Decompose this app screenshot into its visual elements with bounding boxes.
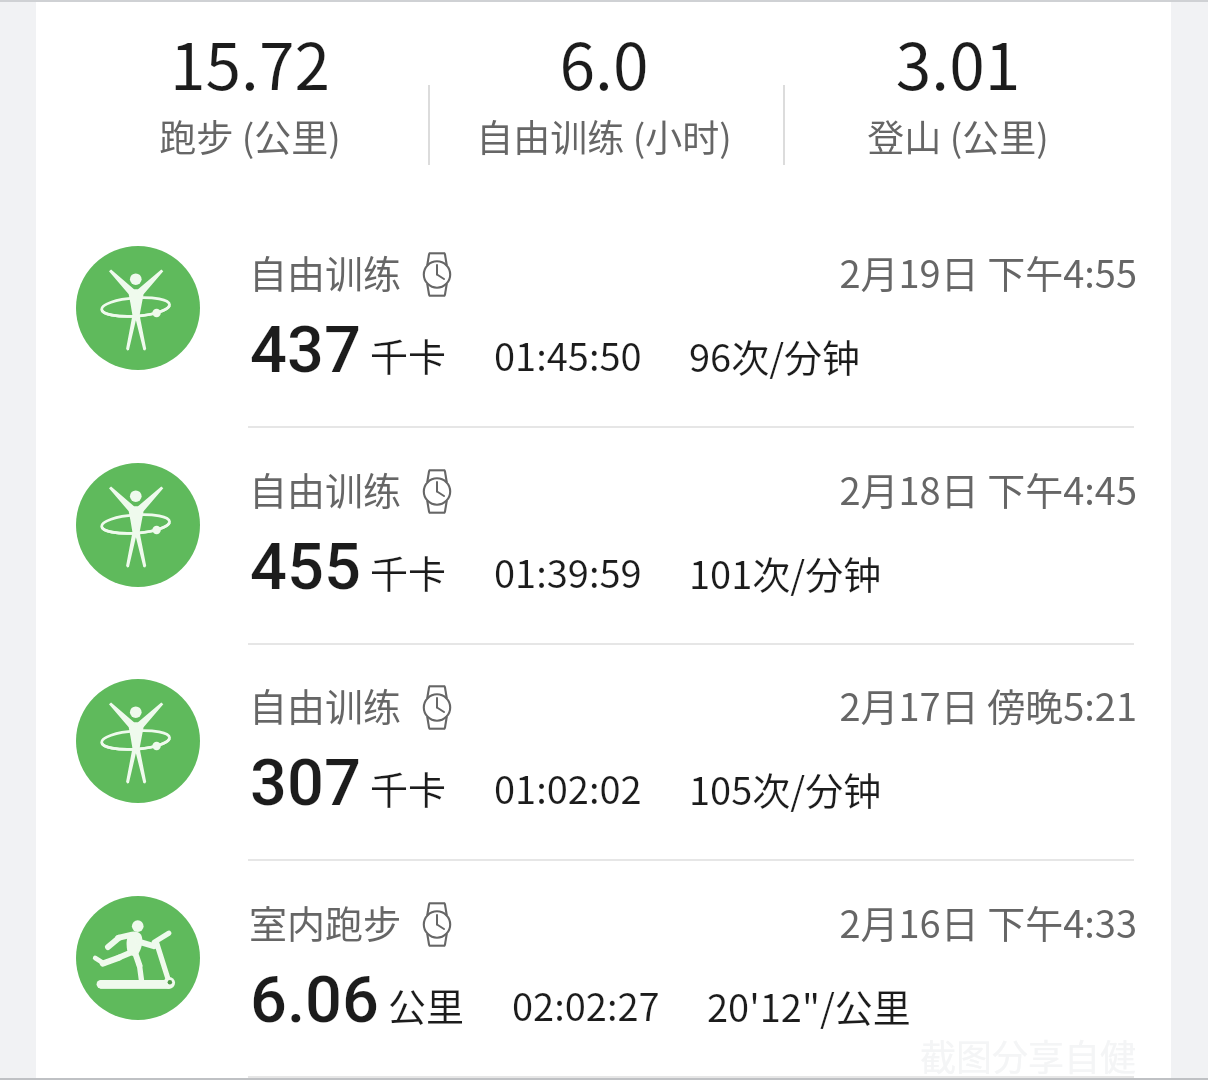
other: Recorded on watch	[422, 469, 452, 514]
button[interactable]: 自由训练	[36, 210, 1171, 427]
staticText: 455	[250, 529, 361, 605]
staticText: 自由训练	[249, 677, 402, 732]
button[interactable]: 自由训练	[36, 643, 1171, 860]
other: Recorded on watch	[422, 685, 452, 730]
staticText: 101次/分钟	[689, 545, 882, 600]
staticText: 自由训练	[249, 244, 402, 299]
button[interactable]: 自由训练	[36, 427, 1171, 644]
staticText: 2月16日 下午4:33	[536, 894, 1137, 949]
staticText: 跑步 (公里)	[73, 109, 427, 163]
staticText: 2月18日 下午4:45	[536, 461, 1137, 516]
button[interactable]: 3.01	[781, 16, 1135, 162]
staticText: 96次/分钟	[689, 328, 861, 383]
staticText: 千卡	[370, 327, 447, 382]
staticText: 307	[250, 745, 361, 821]
other: Recorded on watch	[422, 252, 452, 297]
staticText: 截图分享自健康	[920, 1029, 1170, 1075]
staticText: 千卡	[370, 544, 447, 599]
staticText: 15.72	[73, 16, 427, 109]
staticText: 6.0	[427, 16, 781, 109]
staticText: 02:02:27	[512, 977, 660, 1032]
staticText: 01:02:02	[494, 760, 642, 815]
button[interactable]: 6.0	[427, 16, 781, 162]
staticText: 437	[250, 312, 361, 388]
staticText: 01:45:50	[494, 327, 642, 382]
staticText: 01:39:59	[494, 544, 642, 599]
staticText: 20'12"/公里	[707, 978, 911, 1033]
staticText: 室内跑步	[249, 894, 402, 949]
staticText: 自由训练 (小时)	[427, 109, 781, 163]
button[interactable]: 15.72	[73, 16, 427, 162]
staticText: 2月17日 傍晚5:21	[536, 677, 1137, 732]
button[interactable]: 室内跑步	[36, 860, 1171, 1077]
staticText: 公里	[388, 977, 465, 1032]
staticText: 105次/分钟	[689, 761, 882, 816]
staticText: 登山 (公里)	[781, 109, 1135, 163]
staticText: 6.06	[250, 962, 379, 1038]
staticText: 自由训练	[249, 461, 402, 516]
staticText: 千卡	[370, 760, 447, 815]
other: Recorded on watch	[422, 902, 452, 947]
staticText: 2月19日 下午4:55	[536, 244, 1137, 299]
staticText: 3.01	[781, 16, 1135, 109]
